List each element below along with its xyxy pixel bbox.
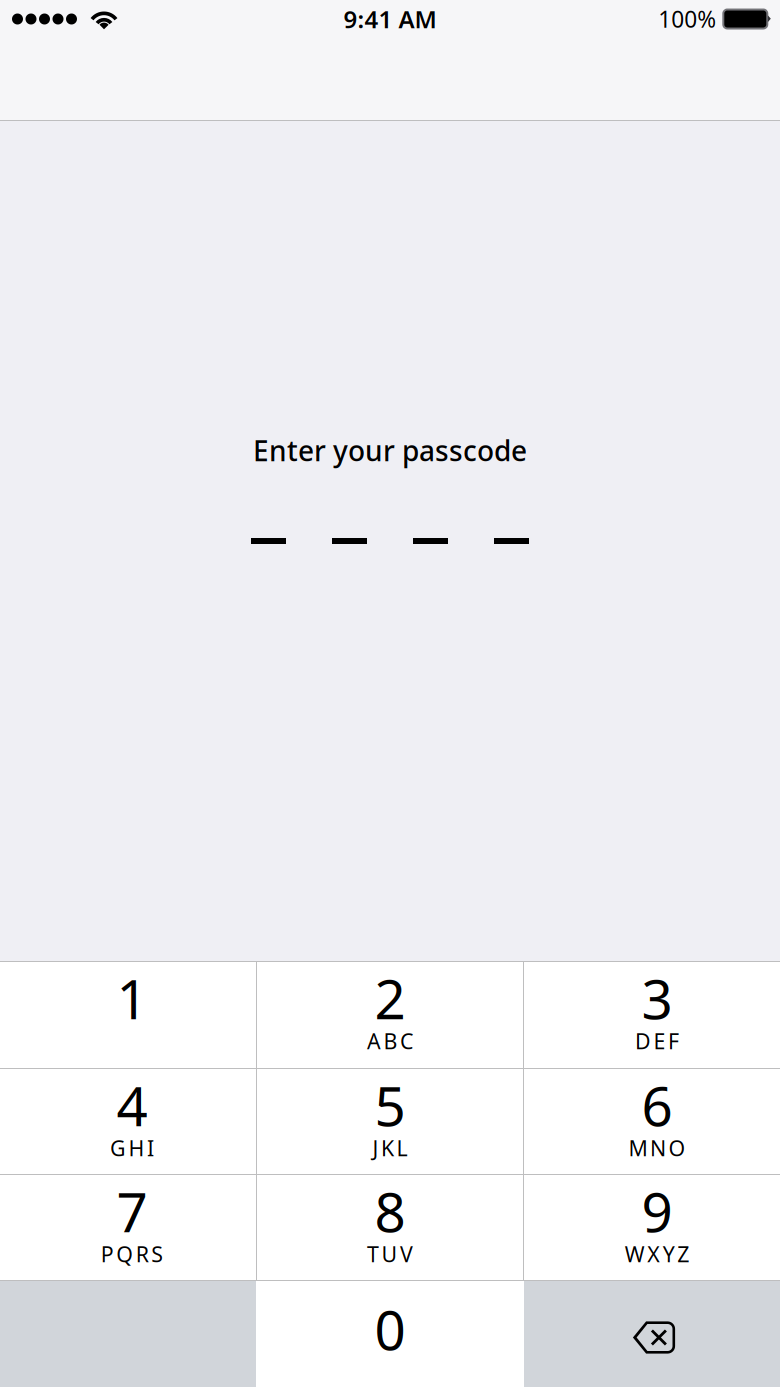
staticText: GHI [110, 1134, 154, 1162]
staticText: 9:41 AM [343, 3, 436, 35]
staticText: 9 [641, 1175, 672, 1247]
staticText: Enter your passcode [253, 432, 527, 469]
button[interactable]: 0 [256, 1281, 524, 1387]
staticText: 4 [116, 1069, 147, 1141]
staticText: 3 [641, 962, 672, 1034]
button[interactable]: 5 [257, 1069, 523, 1174]
staticText: 5 [374, 1069, 405, 1141]
staticText: 6 [641, 1069, 672, 1141]
button[interactable]: 9 [524, 1175, 780, 1280]
button[interactable]: 6 [524, 1069, 780, 1174]
staticText: 0 [374, 1293, 405, 1365]
button[interactable]: 4 [0, 1069, 256, 1174]
staticText: 7 [116, 1175, 147, 1247]
staticText: WXYZ [625, 1240, 689, 1268]
staticText: MNO [628, 1134, 685, 1162]
staticText: DEF [635, 1027, 679, 1055]
staticText: 8 [374, 1175, 405, 1247]
button[interactable]: 3 [524, 962, 780, 1068]
button[interactable]: Delete [524, 1281, 780, 1387]
button[interactable]: 1 [0, 962, 256, 1068]
staticText: TUV [367, 1240, 413, 1268]
staticText: 100% [658, 4, 716, 34]
staticText: 2 [374, 962, 405, 1034]
button[interactable]: 8 [257, 1175, 523, 1280]
staticText: PQRS [101, 1240, 163, 1268]
button[interactable]: 2 [257, 962, 523, 1068]
button[interactable]: 7 [0, 1175, 256, 1280]
staticText: ABC [367, 1027, 413, 1055]
staticText: JKL [372, 1134, 407, 1162]
staticText: 1 [116, 962, 147, 1034]
